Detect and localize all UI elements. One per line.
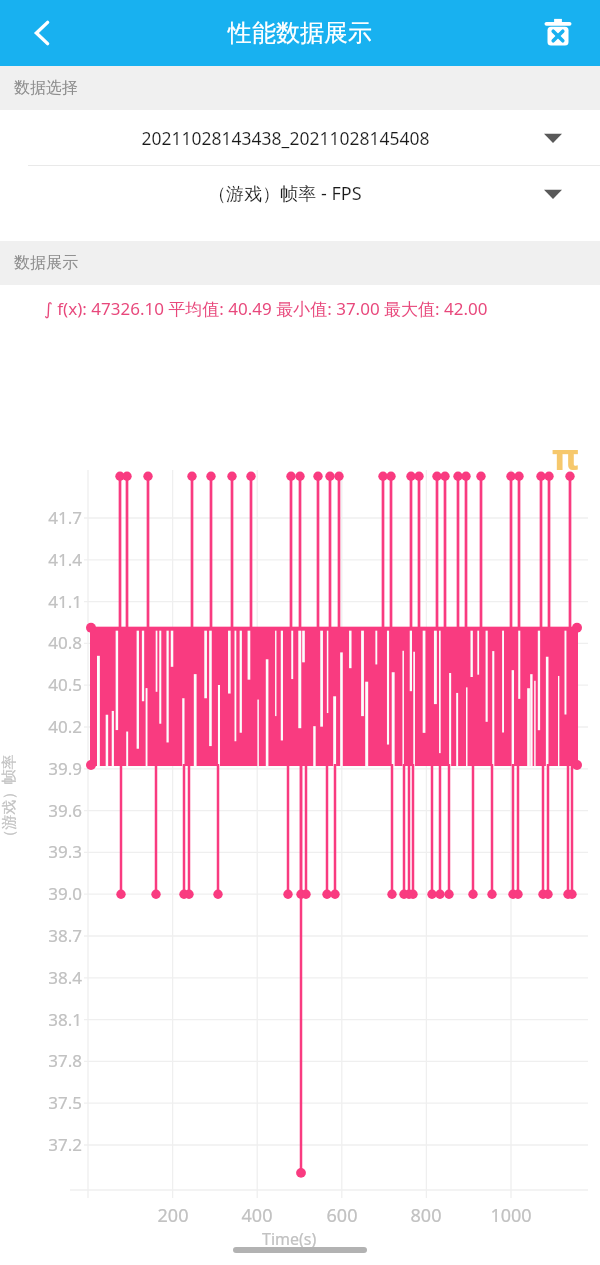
staticText: 37.5 bbox=[22, 1091, 82, 1114]
staticText: （游戏）帧率 - FPS bbox=[208, 181, 362, 206]
staticText: 40.5 bbox=[22, 673, 82, 696]
staticText: 41.1 bbox=[22, 590, 82, 613]
button[interactable]: 20211028143438_20211028145408 bbox=[0, 110, 600, 165]
staticText: 40.2 bbox=[22, 715, 82, 738]
staticText: 40.8 bbox=[22, 631, 82, 654]
staticText: 400 bbox=[221, 1203, 293, 1228]
staticText: 38.7 bbox=[22, 924, 82, 947]
staticText: 39.0 bbox=[22, 882, 82, 905]
staticText: 数据选择 bbox=[14, 78, 78, 98]
staticText: 41.7 bbox=[22, 506, 82, 529]
staticText: 性能数据展示 bbox=[228, 18, 372, 48]
staticText: 38.1 bbox=[22, 1008, 82, 1031]
button[interactable]: Back bbox=[14, 5, 70, 61]
staticText: 37.8 bbox=[22, 1049, 82, 1072]
button[interactable]: Delete bbox=[532, 7, 584, 59]
staticText: 37.2 bbox=[22, 1133, 82, 1156]
staticText: （游戏）帧率 bbox=[0, 754, 18, 844]
staticText: Time(s) bbox=[262, 1228, 317, 1250]
staticText: ∫ f(x): 47326.10 平均值: 40.49 最小值: 37.00 最… bbox=[44, 297, 578, 320]
staticText: 1000 bbox=[475, 1203, 547, 1228]
staticText: 38.4 bbox=[22, 966, 82, 989]
staticText: 20211028143438_20211028145408 bbox=[141, 126, 430, 150]
staticText: 600 bbox=[306, 1203, 378, 1228]
staticText: 39.3 bbox=[22, 840, 82, 863]
staticText: 39.6 bbox=[22, 799, 82, 822]
staticText: 800 bbox=[390, 1203, 462, 1228]
staticText: 200 bbox=[137, 1203, 209, 1228]
staticText: 数据展示 bbox=[14, 253, 78, 273]
staticText: 41.4 bbox=[22, 548, 82, 571]
button[interactable]: （游戏）帧率 - FPS bbox=[0, 166, 600, 221]
staticText: π bbox=[552, 432, 579, 481]
staticText: 39.9 bbox=[22, 757, 82, 780]
